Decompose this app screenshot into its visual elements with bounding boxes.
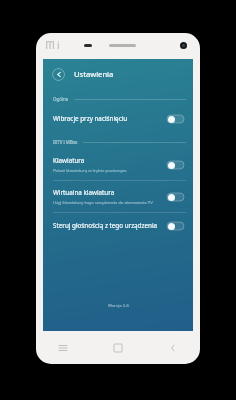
- staticText: Steruj głośnością z tego urządzenia: [53, 221, 158, 230]
- staticText: Wersja 3.6: [108, 302, 129, 308]
- button[interactable]: Steruj głośnością z tego urządzenia: [43, 213, 193, 238]
- button[interactable]: Wstecz: [145, 332, 200, 364]
- button[interactable]: Wibracje przy naciśnięciu: [43, 106, 193, 131]
- staticText: IRTV i MBox: [53, 139, 78, 145]
- button[interactable]: Przełącznik: [167, 193, 184, 201]
- staticText: Ustawienia: [74, 69, 114, 79]
- staticText: Klawiatura: [53, 156, 85, 165]
- button[interactable]: Przełącznik: [167, 115, 184, 123]
- button[interactable]: Ekran główny: [90, 332, 145, 364]
- button[interactable]: Menu: [36, 332, 90, 364]
- staticText: Pokaż klawiaturę w trybie poziomym: [53, 167, 127, 173]
- staticText: Użyj klawiatury tego urządzenia do stero…: [53, 199, 153, 205]
- button[interactable]: Wstecz: [52, 68, 65, 81]
- staticText: Wirtualna klawiatura: [53, 188, 115, 197]
- staticText: Wibracje przy naciśnięciu: [53, 114, 128, 123]
- button[interactable]: Przełącznik: [167, 161, 184, 169]
- button[interactable]: Wirtualna klawiatura: [43, 181, 193, 212]
- button[interactable]: Klawiatura: [43, 149, 193, 180]
- staticText: Ogólne: [53, 96, 69, 102]
- button[interactable]: Przełącznik: [167, 222, 184, 230]
